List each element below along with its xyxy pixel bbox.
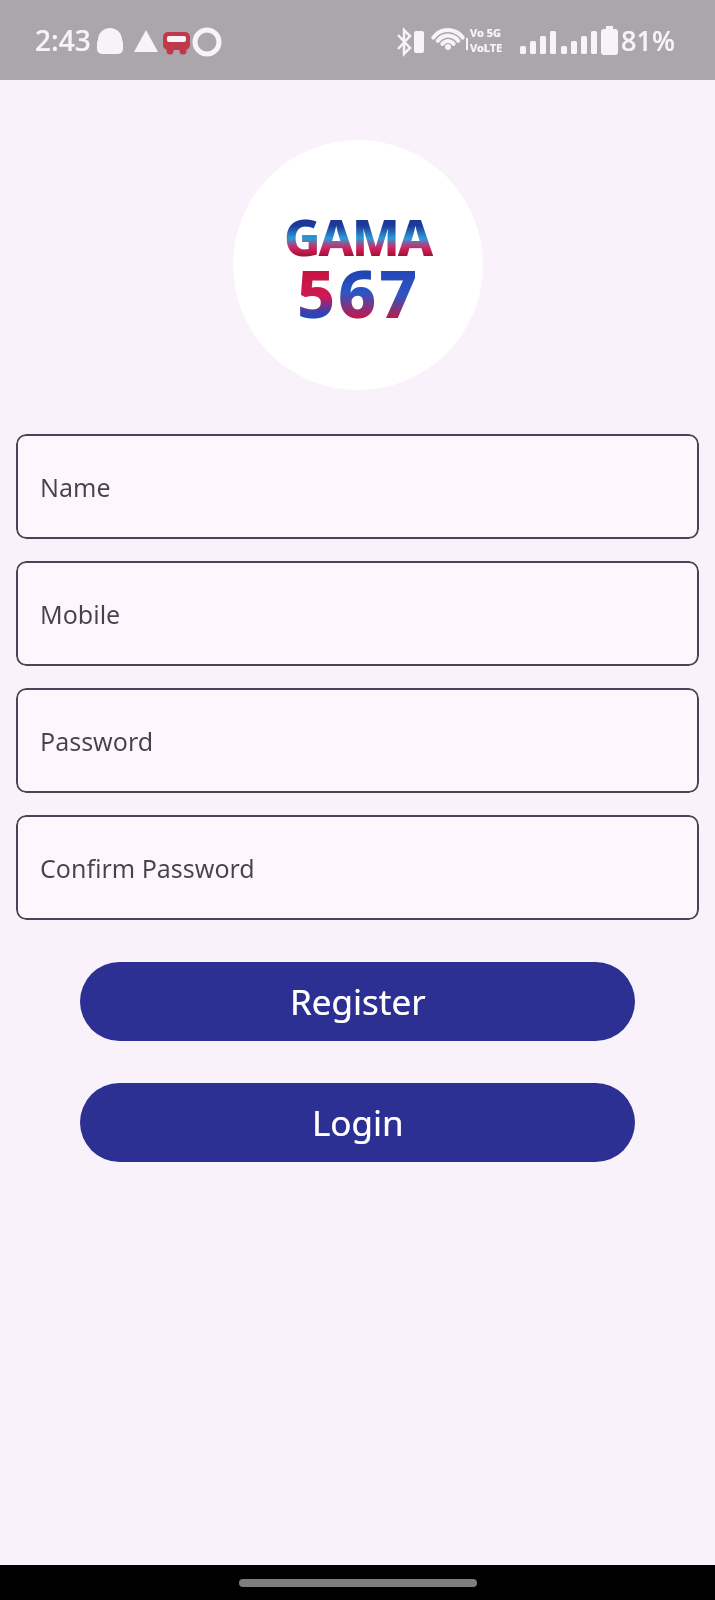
staticText: VoLTE	[470, 40, 503, 55]
staticText: Confirm Password	[40, 851, 255, 885]
staticText: 2:43	[35, 21, 91, 59]
button[interactable]: Confirm Password	[16, 815, 699, 920]
button[interactable]: Register	[80, 962, 635, 1041]
button[interactable]: Login	[80, 1083, 635, 1162]
staticText: 81%	[621, 22, 675, 59]
button[interactable]: Password	[16, 688, 699, 793]
button[interactable]: Name	[16, 434, 699, 539]
staticText: Vo 5G	[470, 25, 501, 40]
staticText: 6	[338, 247, 379, 337]
staticText: Mobile	[40, 597, 121, 631]
button[interactable]: Mobile	[16, 561, 699, 666]
staticText: Password	[40, 724, 154, 758]
staticText: 7	[379, 247, 420, 337]
staticText: 5	[297, 247, 338, 337]
staticText: Login	[312, 1099, 404, 1147]
staticText: GAMA	[284, 203, 432, 271]
staticText: Register	[290, 978, 426, 1026]
staticText: Name	[40, 470, 111, 504]
